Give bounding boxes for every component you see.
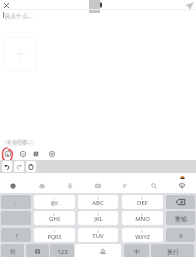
- button[interactable]: 重输: [166, 211, 195, 225]
- button[interactable]: 7: [34, 228, 75, 242]
- button[interactable]: Keyboard layout: [93, 181, 103, 191]
- staticText: 你在哪...: [12, 139, 32, 146]
- staticText: JKL: [94, 215, 103, 223]
- staticText: 5: [97, 212, 100, 217]
- button[interactable]: Voice input: [65, 181, 75, 191]
- staticText: 重输: [175, 215, 187, 223]
- button[interactable]: 2: [78, 195, 118, 209]
- staticText: 4: [53, 212, 56, 217]
- staticText: .: [15, 215, 17, 223]
- button[interactable]: 123: [50, 244, 74, 257]
- button[interactable]: Send: [185, 2, 194, 11]
- button[interactable]: ?: [1, 228, 31, 242]
- button[interactable]: Cloud input: [37, 181, 47, 191]
- staticText: 中: [134, 248, 140, 256]
- button[interactable]: 8: [78, 228, 118, 242]
- button[interactable]: 符: [1, 244, 24, 257]
- staticText: DEF: [137, 199, 148, 207]
- staticText: PQRS: [47, 233, 62, 240]
- staticText: ,: [15, 199, 17, 207]
- staticText: @/.: [50, 199, 60, 207]
- button[interactable]: 换行: [151, 244, 194, 257]
- button[interactable]: Add image: [3, 149, 12, 158]
- button[interactable]: Hide keyboard: [177, 181, 187, 191]
- staticText: 7: [53, 229, 56, 234]
- button[interactable]: Change input method: [26, 244, 49, 257]
- button[interactable]: Mention: [47, 149, 56, 158]
- staticText: 2: [97, 196, 100, 201]
- button[interactable]: 0: [166, 228, 195, 242]
- button[interactable]: Switch Chinese English: [124, 244, 149, 257]
- staticText: 1: [53, 196, 56, 201]
- button[interactable]: 5: [78, 211, 118, 225]
- button[interactable]: Space: [75, 244, 121, 257]
- button[interactable]: Topic: [31, 149, 40, 158]
- button[interactable]: 3: [122, 195, 163, 209]
- staticText: 6: [141, 212, 144, 217]
- button[interactable]: Undo: [2, 161, 12, 172]
- staticText: 9: [141, 229, 144, 234]
- button[interactable]: Clipboard: [26, 161, 36, 172]
- staticText: 0: [179, 232, 183, 240]
- button[interactable]: Redo: [14, 161, 24, 172]
- button[interactable]: Close: [4, 3, 9, 8]
- staticText: 8: [97, 229, 100, 234]
- button[interactable]: Search: [149, 181, 159, 191]
- staticText: ?: [15, 232, 18, 240]
- staticText: WXYZ: [135, 233, 150, 240]
- button[interactable]: 6: [122, 211, 163, 225]
- staticText: 说点什么...: [4, 12, 33, 20]
- button[interactable]: Handwriting: [120, 181, 130, 191]
- staticText: TUV: [92, 232, 104, 240]
- staticText: 123: [57, 248, 68, 256]
- button[interactable]: Keyboard settings: [8, 181, 18, 191]
- staticText: ABC: [92, 199, 104, 207]
- staticText: 符: [10, 248, 16, 256]
- staticText: 换行: [167, 248, 179, 256]
- button[interactable]: Add location: [4, 139, 35, 146]
- button[interactable]: 1: [34, 195, 75, 209]
- button[interactable]: Emoji: [18, 149, 27, 158]
- button[interactable]: Backspace: [166, 195, 195, 209]
- button[interactable]: 9: [122, 228, 163, 242]
- staticText: 3: [141, 196, 144, 201]
- staticText: MNO: [135, 215, 150, 223]
- staticText: GHI: [49, 215, 60, 223]
- button[interactable]: 4: [34, 211, 75, 225]
